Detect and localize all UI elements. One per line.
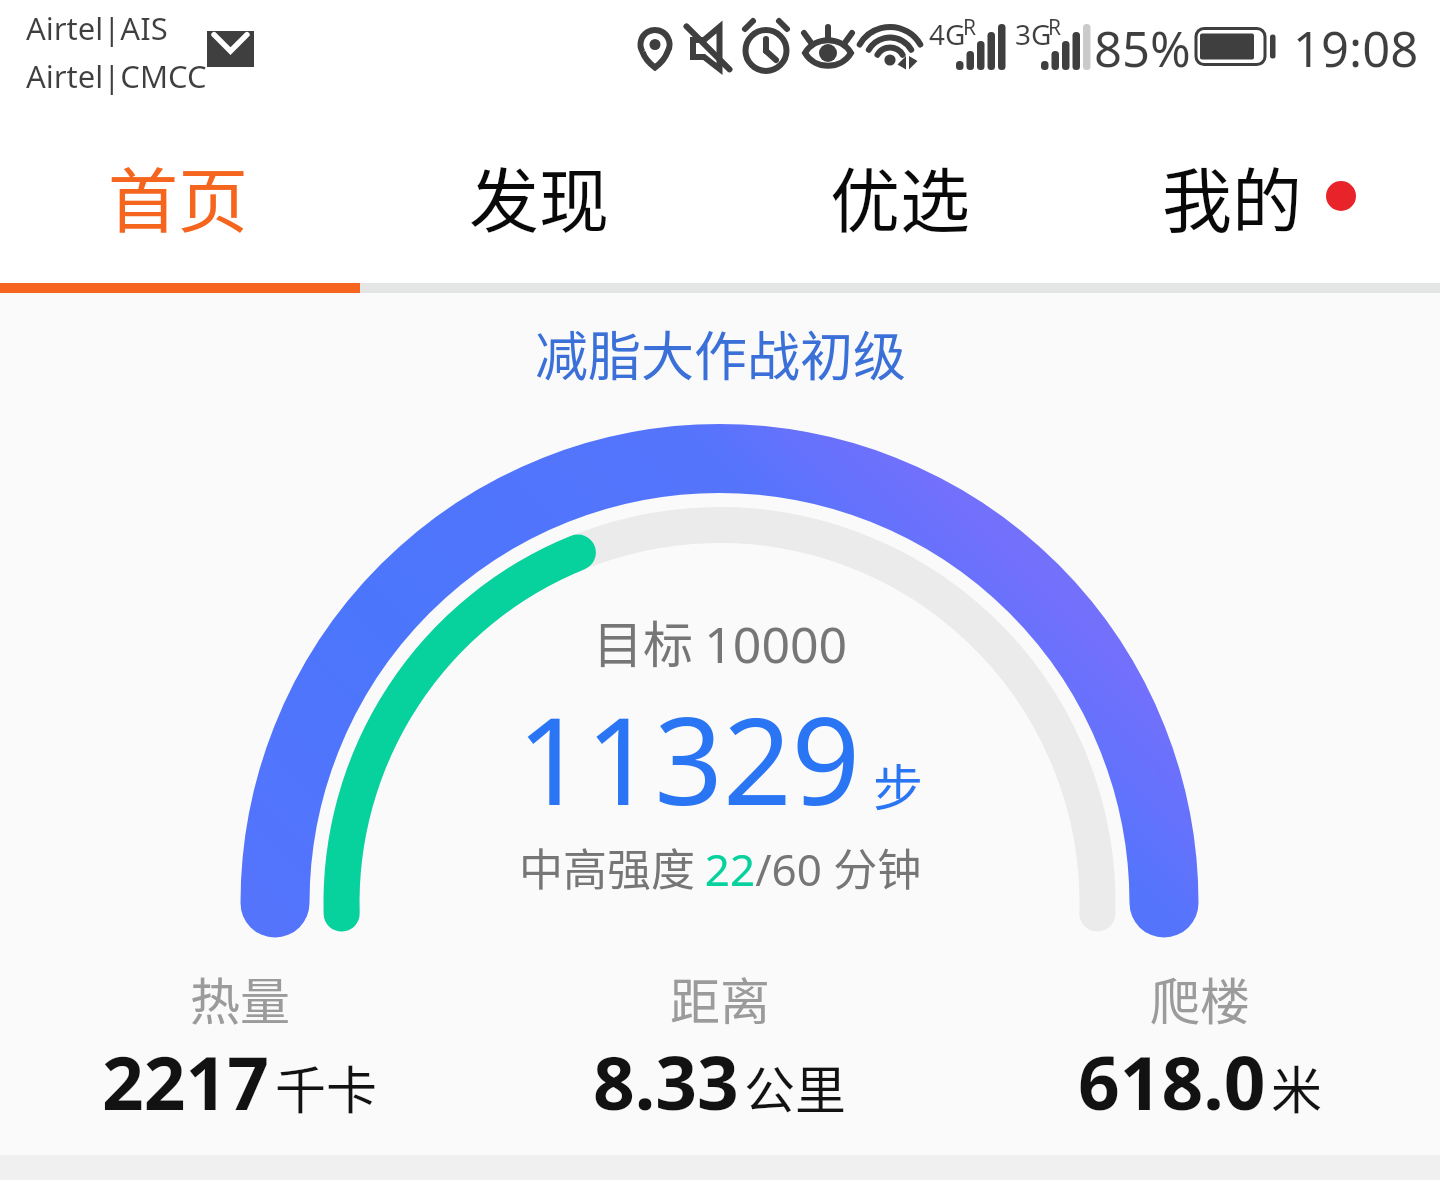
staticText: R: [1048, 13, 1062, 42]
staticText: R: [963, 13, 977, 42]
staticText: 爬楼: [1150, 962, 1250, 1034]
button[interactable]: 发现: [379, 110, 699, 283]
button[interactable]: 优选: [740, 110, 1060, 283]
staticText: 距离: [670, 962, 770, 1034]
staticText: 目标 10000: [593, 605, 848, 678]
staticText: 11329: [517, 677, 861, 840]
button[interactable]: 热量: [0, 962, 480, 1133]
staticText: 我的: [1162, 146, 1302, 247]
staticText: 公里: [744, 1050, 847, 1124]
staticText: 减脂大作战初级: [535, 315, 906, 385]
staticText: 发现: [469, 146, 609, 247]
staticText: Airtel|CMCC: [26, 55, 207, 97]
staticText: 19:08: [1293, 15, 1419, 82]
staticText: 米: [1271, 1050, 1323, 1124]
button[interactable]: 首页: [18, 110, 338, 283]
staticText: 85%: [1094, 15, 1191, 82]
staticText: 千卡: [275, 1050, 378, 1124]
staticText: 2217: [102, 1032, 270, 1131]
staticText: 618.0: [1078, 1032, 1266, 1131]
staticText: 中高强度 22/60 分钟: [519, 835, 922, 899]
button[interactable]: 爬楼: [960, 962, 1440, 1133]
other: Unread message: [207, 31, 254, 67]
button[interactable]: 距离: [480, 962, 960, 1133]
staticText: Airtel|AIS: [26, 7, 168, 49]
button[interactable]: 我的: [1072, 110, 1392, 283]
button[interactable]: Step counter ring: [240, 413, 1200, 933]
staticText: 4G: [929, 15, 966, 53]
staticText: 3G: [1015, 15, 1052, 53]
staticText: 8.33: [593, 1032, 739, 1131]
staticText: 步: [873, 748, 923, 820]
button[interactable]: 减脂大作战初级: [500, 315, 940, 385]
staticText: 首页: [108, 146, 248, 247]
staticText: 热量: [190, 962, 290, 1034]
staticText: 优选: [830, 146, 970, 247]
